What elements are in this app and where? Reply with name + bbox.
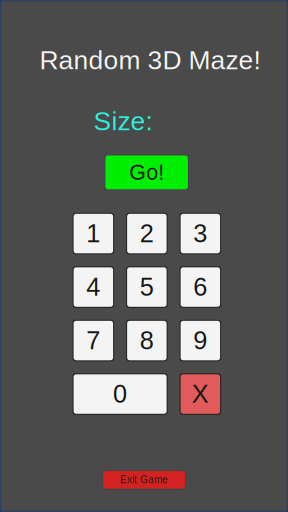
staticText: Random 3D Maze!: [39, 45, 260, 75]
staticText: Go!: [129, 160, 164, 184]
staticText: Exit Game: [120, 474, 168, 485]
staticText: 2: [140, 219, 154, 248]
button[interactable]: 6: [180, 266, 221, 308]
button[interactable]: 1: [73, 213, 114, 254]
staticText: Size:: [93, 106, 152, 136]
button[interactable]: Go!: [104, 154, 189, 190]
staticText: 8: [140, 326, 154, 355]
button[interactable]: 3: [180, 213, 221, 254]
staticText: 0: [113, 380, 127, 408]
button[interactable]: 5: [126, 266, 168, 308]
staticText: 9: [193, 326, 207, 355]
staticText: 6: [193, 273, 207, 301]
button[interactable]: Exit Game: [102, 470, 186, 490]
staticText: X: [192, 380, 209, 408]
staticText: 3: [193, 219, 207, 248]
button[interactable]: 4: [73, 266, 114, 308]
staticText: 4: [86, 273, 100, 301]
staticText: 1: [86, 219, 100, 248]
button[interactable]: 7: [73, 320, 114, 361]
button[interactable]: 2: [126, 213, 168, 254]
button[interactable]: 0: [73, 373, 168, 415]
button[interactable]: X: [180, 373, 221, 415]
staticText: 7: [86, 326, 100, 355]
button[interactable]: 8: [126, 320, 168, 361]
button[interactable]: 9: [180, 320, 221, 361]
staticText: 5: [140, 273, 154, 301]
